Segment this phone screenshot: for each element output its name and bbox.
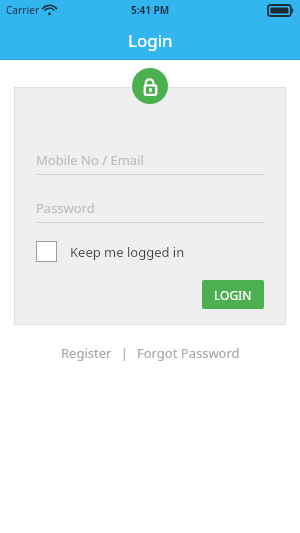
button[interactable]: Password xyxy=(36,197,264,223)
button[interactable]: Keep me logged in xyxy=(36,239,185,264)
staticText: LOGIN xyxy=(214,287,252,303)
staticText: Login xyxy=(128,29,173,52)
button[interactable]: Forgot Password xyxy=(135,341,242,365)
staticText: Register xyxy=(61,344,112,362)
staticText: Mobile No / Email xyxy=(36,151,144,169)
staticText: Forgot Password xyxy=(137,344,240,362)
button[interactable]: Mobile No / Email xyxy=(36,149,264,175)
button[interactable]: Register xyxy=(59,341,114,365)
button[interactable]: Secure login xyxy=(132,68,168,104)
staticText: 5:41 PM xyxy=(131,3,170,17)
staticText: | xyxy=(121,345,128,361)
button[interactable]: LOGIN xyxy=(202,280,264,309)
staticText: Password xyxy=(36,199,95,217)
staticText: Keep me logged in xyxy=(70,243,185,261)
staticText: Carrier xyxy=(6,3,40,17)
